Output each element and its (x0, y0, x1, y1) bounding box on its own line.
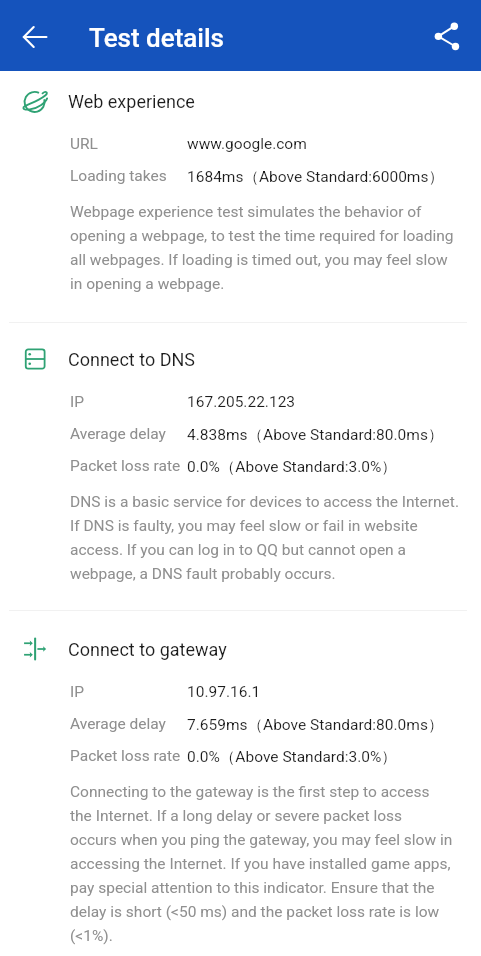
staticText: Loading takes (70, 167, 167, 185)
staticText: 10.97.16.1 (187, 683, 261, 701)
staticText: DNS is a basic service for devices to ac… (70, 493, 459, 583)
staticText: URL (70, 135, 98, 153)
staticText: www.google.com (187, 135, 307, 153)
staticText: Connecting to the gateway is the first s… (70, 783, 453, 945)
staticText: Connect to gateway (68, 639, 227, 660)
staticText: 4.838ms（Above Standard:80.0ms） (187, 425, 444, 445)
staticText: Web experience (68, 91, 195, 112)
staticText: 0.0%（Above Standard:3.0%） (187, 747, 397, 767)
staticText: IP (70, 393, 84, 411)
staticText: Average delay (70, 715, 166, 733)
staticText: Test details (89, 23, 224, 53)
staticText: 1684ms（Above Standard:6000ms） (187, 167, 444, 187)
staticText: 167.205.22.123 (187, 393, 296, 411)
staticText: Average delay (70, 425, 166, 443)
staticText: Connect to DNS (68, 349, 195, 370)
staticText: Packet loss rate (70, 457, 181, 475)
staticText: Packet loss rate (70, 747, 181, 765)
staticText: 7.659ms（Above Standard:80.0ms） (187, 715, 444, 735)
staticText: Webpage experience test simulates the be… (70, 203, 454, 293)
staticText: 0.0%（Above Standard:3.0%） (187, 457, 397, 477)
button[interactable]: Share (424, 13, 470, 59)
staticText: IP (70, 683, 84, 701)
button[interactable]: Back (12, 14, 58, 60)
